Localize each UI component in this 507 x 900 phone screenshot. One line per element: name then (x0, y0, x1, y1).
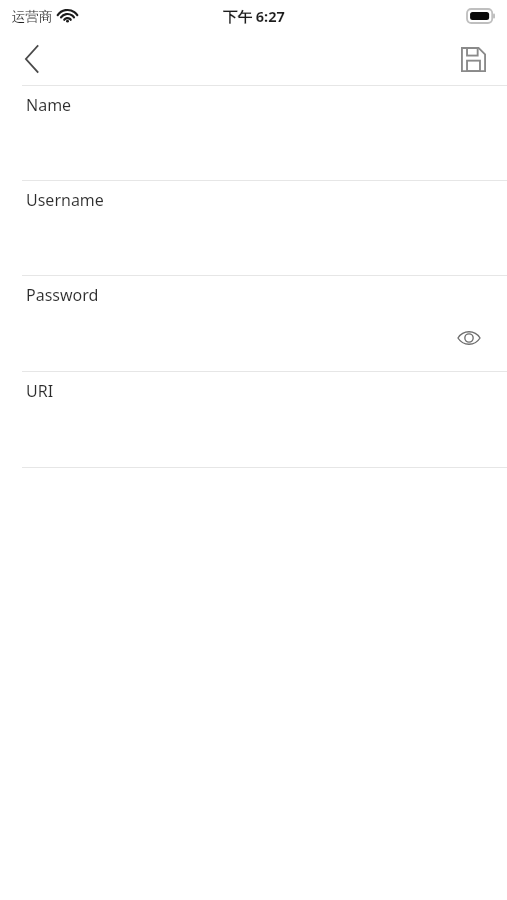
staticText: Username (26, 189, 104, 211)
button[interactable]: URI (0, 372, 507, 467)
button[interactable]: Save (449, 35, 497, 83)
button[interactable]: Name (0, 86, 507, 180)
staticText: URI (26, 380, 54, 402)
button[interactable]: Back (8, 35, 56, 83)
staticText: 运营商 (12, 8, 53, 25)
button[interactable]: Show password (449, 318, 489, 358)
staticText: 下午 6:27 (223, 6, 285, 26)
button[interactable]: Username (0, 181, 507, 275)
staticText: Password (26, 284, 99, 306)
staticText: Name (26, 94, 72, 116)
